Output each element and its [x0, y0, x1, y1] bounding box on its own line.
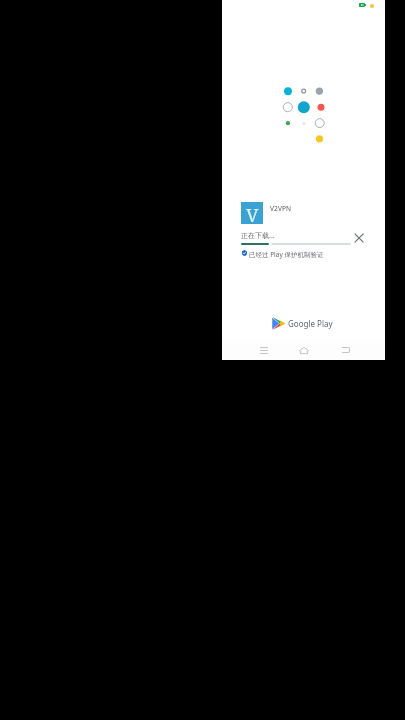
- button[interactable]: Recent apps: [250, 340, 278, 360]
- staticText: 正在下载...: [241, 231, 275, 241]
- staticText: Google Play: [288, 318, 333, 329]
- staticText: 已经过 Play 保护机制验证: [249, 250, 324, 259]
- button[interactable]: Home: [290, 340, 318, 360]
- button[interactable]: Cancel download: [348, 227, 370, 249]
- button[interactable]: Back: [332, 340, 360, 360]
- staticText: V2VPN: [270, 204, 292, 213]
- staticText: V: [246, 202, 259, 224]
